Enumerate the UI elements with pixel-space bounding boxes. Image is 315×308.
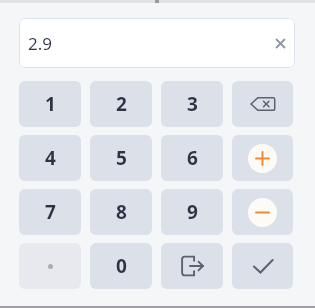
staticText: 4 (45, 145, 56, 171)
staticText: 3 (187, 91, 198, 117)
staticText: 0 (116, 253, 127, 279)
button[interactable]: 9 (161, 189, 223, 235)
staticText: 9 (187, 199, 198, 225)
staticText: 2 (116, 91, 127, 117)
staticText: 5 (116, 145, 127, 171)
button[interactable]: 6 (161, 135, 223, 181)
staticText: 8 (116, 199, 127, 225)
button[interactable]: Confirm (232, 243, 293, 289)
button[interactable]: Clear (265, 28, 295, 58)
button[interactable]: 3 (161, 81, 223, 127)
staticText: 7 (45, 199, 56, 225)
staticText: 1 (45, 91, 56, 117)
button[interactable]: 5 (90, 135, 152, 181)
button[interactable]: Subtract (232, 189, 293, 235)
button[interactable]: 1 (19, 81, 81, 127)
staticText: 2.9 (28, 32, 53, 55)
button[interactable]: 0 (90, 243, 152, 289)
button[interactable]: Add (232, 135, 293, 181)
button[interactable]: Backspace (232, 81, 293, 127)
button[interactable]: 2 (90, 81, 152, 127)
button[interactable]: Exit (161, 243, 223, 289)
button[interactable]: 4 (19, 135, 81, 181)
staticText: 6 (187, 145, 198, 171)
button[interactable]: Decimal point (19, 243, 81, 289)
button[interactable]: 7 (19, 189, 81, 235)
button[interactable]: 8 (90, 189, 152, 235)
button[interactable]: 2.9 (19, 18, 295, 68)
